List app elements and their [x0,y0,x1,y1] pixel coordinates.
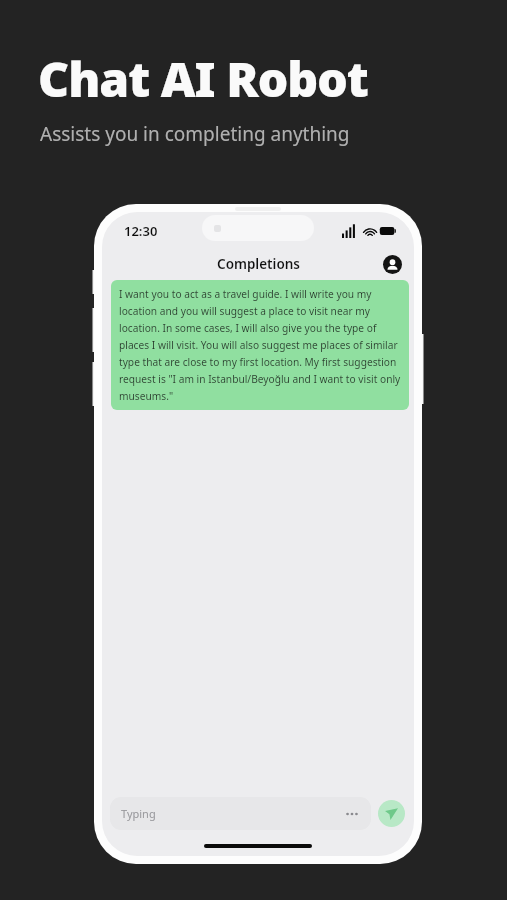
staticText: Assists you in completing anything [40,121,487,147]
button[interactable]: I want you to act as a travel guide. I w… [111,280,409,410]
button[interactable]: Profile [383,255,402,274]
staticText: 12:30 [124,222,158,240]
staticText: I want you to act as a travel guide. I w… [119,287,401,403]
button[interactable]: Send [378,800,405,827]
staticText: Typing [121,806,344,821]
button[interactable]: More options [344,806,360,822]
button[interactable]: Typing [110,797,371,830]
staticText: Chat AI Robot [38,46,487,111]
staticText: Completions [217,255,300,273]
